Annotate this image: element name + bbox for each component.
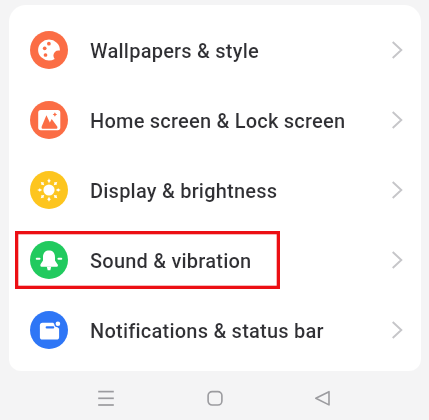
button[interactable]: Sound & vibration — [9, 225, 421, 295]
staticText: Display & brightness — [90, 179, 278, 202]
staticText: Home screen & Lock screen — [90, 109, 346, 132]
button[interactable]: Home screen & Lock screen — [9, 85, 421, 155]
button[interactable]: Back — [297, 371, 347, 420]
button[interactable]: Recent apps — [81, 371, 131, 420]
button[interactable]: Home — [190, 371, 240, 420]
staticText: Sound & vibration — [90, 249, 252, 272]
button[interactable]: Display & brightness — [9, 155, 421, 225]
button[interactable]: Wallpapers & style — [9, 15, 421, 85]
button[interactable]: Notifications & status bar — [9, 295, 421, 365]
staticText: Wallpapers & style — [90, 39, 259, 62]
staticText: Notifications & status bar — [90, 319, 324, 342]
